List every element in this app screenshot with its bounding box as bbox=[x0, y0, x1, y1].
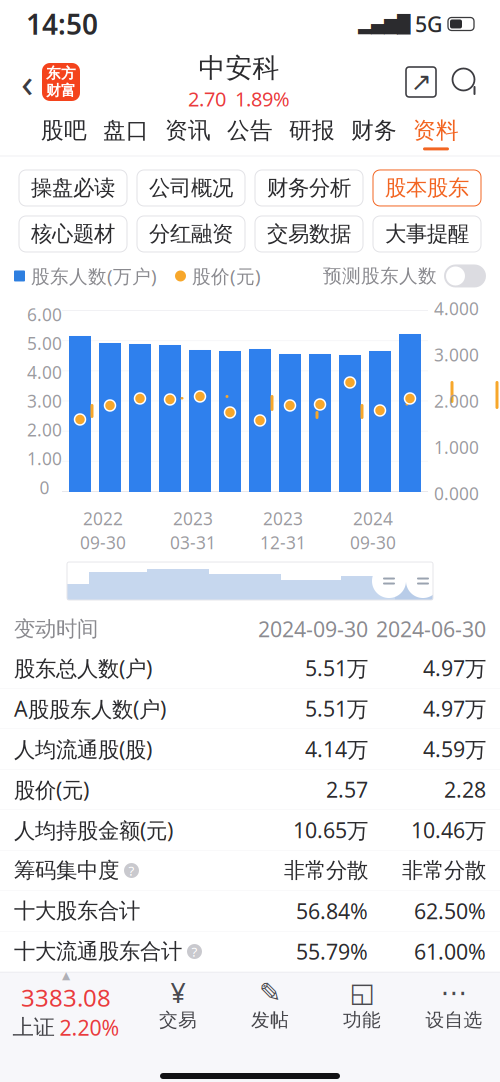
staticText: 研报 bbox=[289, 117, 335, 144]
staticText: ◱ bbox=[349, 977, 374, 1008]
staticText: 62.50% bbox=[414, 897, 486, 925]
staticText: ▲ bbox=[62, 969, 70, 981]
staticText: 10.65万 bbox=[293, 816, 368, 844]
staticText: 设自选 bbox=[425, 1009, 482, 1031]
staticText: 十大流通股东合计 bbox=[14, 938, 182, 965]
staticText: 3.00 bbox=[27, 389, 62, 412]
staticText: 2023 bbox=[173, 507, 213, 530]
staticText: 3383.08 bbox=[21, 981, 111, 1013]
staticText: 6.00 bbox=[27, 303, 62, 326]
button[interactable]: Search bbox=[444, 60, 488, 104]
staticText: ⋯ bbox=[440, 977, 467, 1008]
button[interactable]: 东方财富 bbox=[42, 63, 80, 101]
button[interactable]: 资料 bbox=[405, 111, 467, 155]
button[interactable]: 核心题材 bbox=[19, 216, 127, 252]
button[interactable]: 大事提醒 bbox=[373, 216, 481, 252]
staticText: 股价(元) bbox=[14, 775, 89, 804]
staticText: 非常分散 bbox=[402, 857, 486, 884]
staticText: 4.59万 bbox=[423, 735, 486, 763]
button[interactable]: Range start handle bbox=[372, 564, 406, 598]
button[interactable]: ✎ bbox=[224, 975, 316, 1035]
staticText: 交易数据 bbox=[267, 221, 351, 247]
staticText: 人均持股金额(元) bbox=[14, 816, 173, 844]
button[interactable]: 股吧 bbox=[33, 111, 95, 155]
staticText: 财务分析 bbox=[267, 175, 351, 201]
staticText: 03-31 bbox=[170, 531, 216, 554]
staticText: 分红融资 bbox=[149, 221, 233, 247]
button[interactable]: 交易数据 bbox=[255, 216, 363, 252]
staticText: 资料 bbox=[413, 117, 459, 144]
staticText: 4.97万 bbox=[423, 654, 486, 682]
staticText: 2024 bbox=[353, 507, 393, 530]
staticText: 发帖 bbox=[251, 1009, 289, 1031]
staticText: 1.00 bbox=[27, 447, 62, 470]
staticText: 61.00% bbox=[414, 937, 486, 966]
button[interactable]: 股本股东 bbox=[373, 170, 481, 206]
button[interactable]: 分红融资 bbox=[137, 216, 245, 252]
staticText: 股价(元) bbox=[192, 264, 261, 288]
staticText: 09-30 bbox=[350, 531, 396, 554]
staticText: 东方 bbox=[46, 64, 76, 82]
staticText: ? bbox=[128, 862, 134, 879]
staticText: 1.000 bbox=[434, 436, 479, 459]
button[interactable]: 财务 bbox=[343, 111, 405, 155]
staticText: 资讯 bbox=[165, 117, 211, 144]
staticText: 公司概况 bbox=[149, 175, 233, 201]
staticText: 14:50 bbox=[26, 5, 98, 43]
button[interactable]: 财务分析 bbox=[255, 170, 363, 206]
staticText: 56.84% bbox=[296, 897, 368, 925]
button[interactable]: 资讯 bbox=[157, 111, 219, 155]
staticText: 股吧 bbox=[41, 117, 87, 144]
staticText: 交易 bbox=[159, 1009, 197, 1031]
staticText: 2.28 bbox=[444, 775, 486, 804]
button[interactable]: Back bbox=[12, 60, 42, 104]
staticText: 4.97万 bbox=[423, 694, 486, 723]
staticText: A股股东人数(户) bbox=[14, 694, 166, 723]
staticText: 股东人数(万户) bbox=[31, 264, 157, 288]
staticText: 2.70 bbox=[188, 86, 226, 112]
button[interactable]: 上证指数 3383.08 bbox=[0, 974, 132, 1036]
staticText: 0 bbox=[39, 476, 49, 499]
button[interactable]: 预测股东人数 bbox=[323, 264, 486, 287]
staticText: ? bbox=[191, 943, 197, 960]
staticText: 2.00 bbox=[27, 418, 62, 441]
button[interactable]: 操盘必读 bbox=[19, 170, 127, 206]
staticText: 4.14万 bbox=[305, 735, 368, 763]
button[interactable]: 盘口 bbox=[95, 111, 157, 155]
staticText: 2023 bbox=[263, 507, 303, 530]
staticText: 预测股东人数 bbox=[323, 264, 437, 287]
staticText: 财务 bbox=[351, 117, 397, 144]
button[interactable]: 公司概况 bbox=[137, 170, 245, 206]
staticText: 财富 bbox=[46, 81, 76, 99]
staticText: 10.46万 bbox=[411, 816, 486, 844]
staticText: 2.20% bbox=[59, 1013, 119, 1042]
staticText: 大事提醒 bbox=[385, 221, 469, 247]
button[interactable]: 公告 bbox=[219, 111, 281, 155]
staticText: 5.51万 bbox=[305, 654, 368, 682]
staticText: 55.79% bbox=[296, 937, 368, 966]
staticText: 3.000 bbox=[434, 343, 479, 366]
staticText: 0.000 bbox=[434, 482, 479, 505]
button[interactable]: 研报 bbox=[281, 111, 343, 155]
staticText: 4.00 bbox=[27, 361, 62, 384]
button[interactable]: ◱ bbox=[316, 975, 408, 1035]
staticText: 12-31 bbox=[260, 531, 306, 554]
staticText: ✎ bbox=[259, 977, 281, 1008]
staticText: 4.000 bbox=[434, 297, 479, 320]
staticText: 2.000 bbox=[434, 389, 479, 412]
staticText: 筹码集中度 bbox=[14, 857, 119, 884]
staticText: 5G bbox=[415, 10, 443, 38]
staticText: 2022 bbox=[83, 507, 123, 530]
staticText: 5.00 bbox=[27, 332, 62, 355]
staticText: 2024-06-30 bbox=[376, 615, 486, 643]
staticText: 十大股东合计 bbox=[14, 898, 140, 924]
staticText: ‹ bbox=[21, 55, 33, 108]
button[interactable]: Share bbox=[398, 60, 444, 104]
staticText: 公告 bbox=[227, 117, 273, 144]
button[interactable]: Range end handle bbox=[406, 564, 440, 598]
staticText: 中安科 bbox=[198, 52, 279, 85]
staticText: 1.89% bbox=[235, 86, 290, 112]
button[interactable]: ⋯ bbox=[408, 975, 500, 1035]
button[interactable]: ¥ bbox=[132, 975, 224, 1035]
staticText: 09-30 bbox=[80, 531, 126, 554]
